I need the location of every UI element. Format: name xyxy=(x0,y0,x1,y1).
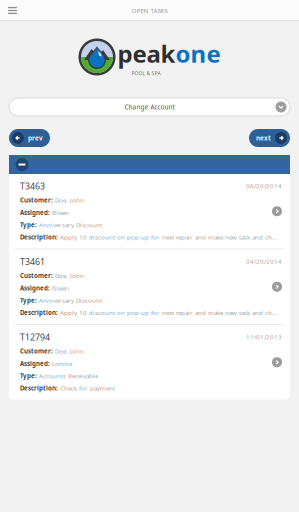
button[interactable]: next xyxy=(249,129,290,147)
staticText: Anniversary Discount xyxy=(39,221,102,229)
staticText: OPEN TASKS xyxy=(131,6,167,15)
staticText: Change Account xyxy=(124,103,174,111)
staticText: 04/20/2014 xyxy=(246,257,282,266)
staticText: Apply 10 discount on pop-up for next rep… xyxy=(60,308,278,317)
staticText: prev xyxy=(28,134,43,142)
staticText: Eileen xyxy=(52,208,69,217)
staticText: Accounts Receivable xyxy=(39,372,98,380)
staticText: Doe, John xyxy=(55,196,84,204)
staticText: Description: xyxy=(20,384,58,392)
button[interactable]: T3463 xyxy=(9,174,290,248)
staticText: Description: xyxy=(20,308,58,317)
staticText: Description: xyxy=(20,233,58,241)
staticText: Customer: xyxy=(20,347,53,355)
staticText: Doe, John xyxy=(55,271,84,280)
staticText: Type: xyxy=(20,372,37,380)
staticText: Assigned: xyxy=(20,359,50,368)
staticText: Customer: xyxy=(20,196,53,204)
staticText: Assigned: xyxy=(20,284,50,292)
staticText: 06/20/2014 xyxy=(246,182,282,190)
staticText: Check for payment xyxy=(60,384,115,392)
button[interactable]: T12794 xyxy=(9,325,290,399)
staticText: T3461 xyxy=(20,255,45,267)
button[interactable]: Menu xyxy=(0,0,25,20)
staticText: Type: xyxy=(20,221,37,229)
button[interactable]: Change Account xyxy=(9,98,290,116)
staticText: POOL & SPA xyxy=(131,70,160,77)
staticText: Anniversary Discount xyxy=(39,296,102,305)
button[interactable]: prev xyxy=(9,129,50,147)
staticText: Assigned: xyxy=(20,208,50,217)
staticText: Lonnie xyxy=(52,359,72,368)
staticText: 11/01/2013 xyxy=(246,333,282,341)
button[interactable]: Collapse section xyxy=(13,155,31,174)
staticText: one xyxy=(175,37,220,70)
staticText: Doe, John xyxy=(55,347,84,355)
staticText: Customer: xyxy=(20,271,53,280)
staticText: Apply 10 discount on pop-up for next rep… xyxy=(60,233,278,241)
staticText: Type: xyxy=(20,296,37,305)
staticText: T12794 xyxy=(20,331,50,343)
button[interactable]: T3461 xyxy=(9,249,290,324)
staticText: peak xyxy=(117,37,175,70)
staticText: next xyxy=(256,134,271,142)
staticText: Eileen xyxy=(52,284,69,292)
staticText: T3463 xyxy=(20,180,45,192)
